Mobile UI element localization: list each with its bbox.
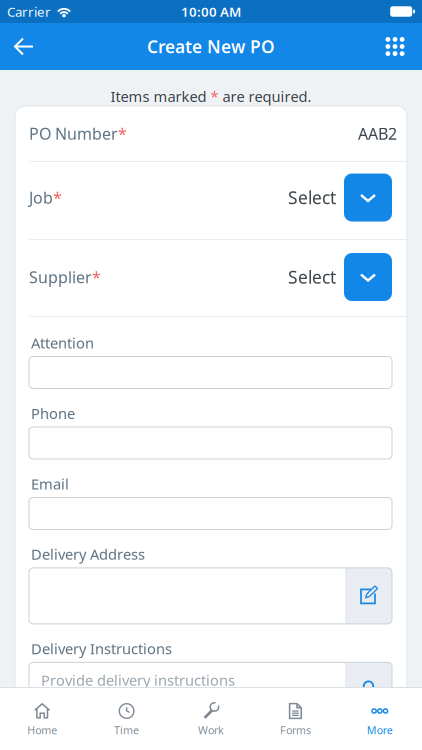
button[interactable]: Menu <box>373 23 417 70</box>
staticText: Home <box>27 723 57 737</box>
staticText: Provide delivery instructions <box>41 670 235 690</box>
button[interactable]: Home <box>0 688 84 750</box>
button[interactable]: More <box>338 688 422 750</box>
button[interactable]: Forms <box>253 688 338 750</box>
staticText: Create New PO <box>147 35 275 58</box>
staticText: * <box>53 187 62 208</box>
staticText: Select <box>288 186 336 209</box>
staticText: * <box>118 123 127 144</box>
staticText: 10:00 AM <box>181 3 241 20</box>
staticText: Delivery Instructions <box>31 639 172 658</box>
button[interactable]: Select Supplier <box>344 253 392 301</box>
staticText: Delivery Address <box>31 544 145 564</box>
staticText: Carrier <box>7 3 51 20</box>
staticText: Work <box>198 723 224 737</box>
staticText: are required. <box>218 86 311 106</box>
staticText: Items marked <box>110 86 210 106</box>
button[interactable]: Time <box>84 688 169 750</box>
button[interactable]: Back <box>2 23 46 70</box>
staticText: Time <box>114 723 139 737</box>
staticText: Email <box>31 474 69 493</box>
button[interactable]: Dictate delivery instructions <box>345 662 392 704</box>
staticText: * <box>210 86 218 106</box>
staticText: PO Number <box>29 123 118 144</box>
button[interactable]: Edit delivery address <box>345 568 392 624</box>
button[interactable]: Work <box>169 688 253 750</box>
button[interactable]: Select Job <box>344 173 392 221</box>
staticText: Supplier <box>29 266 92 288</box>
staticText: Forms <box>280 723 311 737</box>
staticText: * <box>92 266 101 288</box>
staticText: Phone <box>31 403 75 423</box>
staticText: Select <box>288 265 336 288</box>
staticText: More <box>367 723 393 737</box>
staticText: Attention <box>31 333 94 352</box>
staticText: Job <box>29 187 53 208</box>
staticText: AAB2 <box>358 123 397 144</box>
